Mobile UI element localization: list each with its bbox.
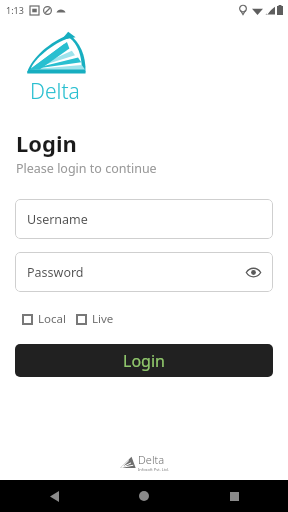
button[interactable]: Local [22, 308, 66, 330]
staticText: Login [123, 350, 165, 372]
staticText: Local [38, 311, 66, 327]
button[interactable]: Show password [241, 260, 265, 284]
staticText: Password [27, 264, 84, 281]
staticText: Username [27, 211, 88, 228]
staticText: Please login to continue [16, 160, 157, 177]
button[interactable]: Home [130, 482, 158, 510]
button[interactable]: Live [76, 308, 114, 330]
button[interactable]: Recents [220, 482, 248, 510]
button[interactable]: Password [15, 252, 273, 292]
staticText: Live [92, 311, 114, 327]
button[interactable]: Login [15, 344, 273, 377]
staticText: Login [16, 128, 77, 158]
button[interactable]: Back [40, 482, 68, 510]
staticText: Infosoft Pvt. Ltd. [138, 467, 169, 472]
button[interactable]: Username [15, 199, 273, 239]
staticText: 1:13 [6, 4, 24, 16]
staticText: Delta [30, 77, 80, 106]
staticText: Delta [138, 452, 165, 467]
